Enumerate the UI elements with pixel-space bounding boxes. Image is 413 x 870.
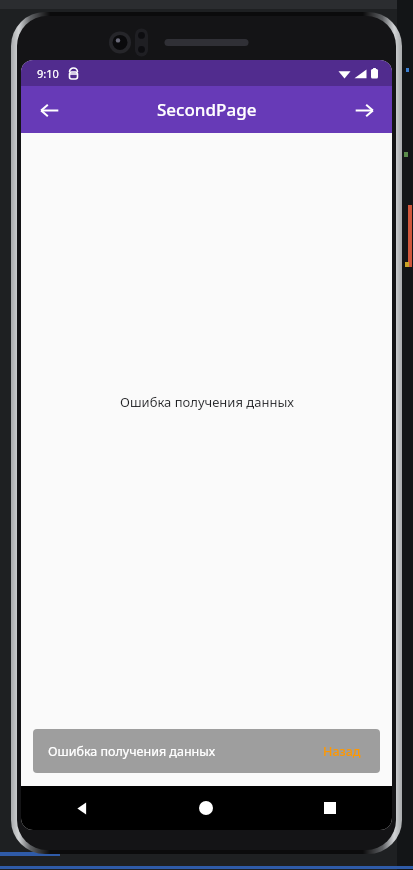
button[interactable]: Forward: [344, 90, 384, 130]
staticText: Ошибка получения данных: [120, 393, 294, 411]
button[interactable]: Ошибка получения данных: [33, 729, 380, 773]
staticText: Ошибка получения данных: [48, 743, 216, 760]
button[interactable]: Home: [144, 786, 268, 830]
staticText: Назад: [323, 743, 361, 760]
button[interactable]: Назад: [319, 739, 365, 764]
button[interactable]: Back: [21, 786, 144, 830]
button[interactable]: Back: [29, 90, 69, 130]
staticText: SecondPage: [157, 98, 257, 121]
staticText: 9:10: [37, 66, 59, 81]
button[interactable]: Recent apps: [268, 786, 392, 830]
